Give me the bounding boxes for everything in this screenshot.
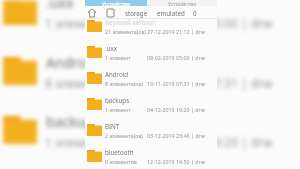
staticText: 0: [193, 9, 197, 17]
button[interactable]: storage: [125, 9, 148, 17]
staticText: emulated: [157, 9, 185, 17]
staticText: .uxx: [46, 0, 74, 12]
staticText: 8 элемента(ов): [105, 80, 143, 87]
staticText: 1 элемент: [105, 106, 131, 113]
staticText: 27-12-2019 21:12 | drw: [147, 28, 205, 35]
button[interactable]: Устройство: [85, 0, 147, 6]
staticText: storage: [125, 9, 148, 17]
staticText: Верхний каталог: [105, 18, 156, 26]
button[interactable]: Internal storage: [105, 7, 116, 18]
staticText: 19-11-2019 07:31 | drw: [141, 75, 273, 91]
button[interactable]: .uxx: [0, 0, 300, 42]
button[interactable]: backups: [85, 92, 217, 118]
button[interactable]: BINT: [0, 161, 300, 169]
button[interactable]: Home: [86, 7, 97, 18]
staticText: 1 элемент: [45, 134, 104, 150]
staticText: 08-02-2019 05:00 | drw: [147, 54, 205, 61]
staticText: BINT: [105, 122, 120, 130]
staticText: .uxx: [105, 44, 118, 52]
staticText: 2 элемента(ов): [105, 132, 143, 139]
staticText: 21 элемента(ов): [105, 28, 146, 35]
staticText: 19-11-2019 07:31 | drw: [147, 80, 205, 87]
staticText: backups: [46, 112, 101, 131]
staticText: 1 элемент: [45, 15, 104, 31]
staticText: 8 элемента(ов): [45, 75, 132, 91]
staticText: backups: [105, 96, 130, 104]
button[interactable]: backups: [0, 102, 300, 161]
staticText: 12-12-2019 14:50 | drw: [147, 158, 205, 165]
button[interactable]: bluetooth: [85, 144, 217, 169]
staticText: 0 элементов: [105, 158, 137, 165]
button[interactable]: .uxx: [85, 40, 217, 66]
button[interactable]: Устройство: [147, 0, 217, 6]
staticText: Устройство: [168, 0, 197, 6]
staticText: 08-02-2019 05:00 | drw: [141, 15, 273, 31]
button[interactable]: Android: [0, 43, 300, 102]
staticText: bluetooth: [105, 148, 134, 156]
staticText: 04-12-2019 19:20 | drw: [141, 134, 273, 150]
staticText: 03-12-2019 23:46 | drw: [147, 132, 205, 139]
button[interactable]: BINT: [85, 118, 217, 144]
button[interactable]: Верхний каталог: [85, 14, 217, 40]
staticText: 04-12-2019 19:20 | drw: [147, 106, 205, 113]
button[interactable]: emulated: [157, 9, 185, 17]
staticText: 1 элемент: [105, 54, 131, 61]
staticText: Android: [46, 53, 99, 72]
button[interactable]: 0: [193, 9, 197, 17]
staticText: Устройство: [102, 0, 131, 6]
button[interactable]: Android: [85, 66, 217, 92]
staticText: Android: [105, 70, 129, 78]
